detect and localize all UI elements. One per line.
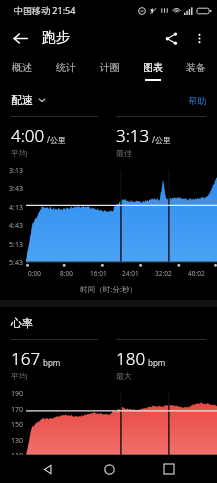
staticText: 4:00 (11, 124, 45, 147)
staticText: 4:13 (0, 203, 23, 213)
staticText: 5:13 (0, 240, 23, 250)
staticText: 装备 (186, 61, 206, 74)
button[interactable]: 帮助 (188, 95, 206, 106)
staticText: /公里 (47, 134, 66, 145)
staticText: 24:01 (122, 269, 139, 278)
staticText: 中国移动 21:54 (14, 4, 76, 16)
staticText: 170 (0, 405, 23, 415)
staticText: /公里 (152, 134, 171, 145)
staticText: 平均 (11, 148, 27, 158)
staticText: 8:00 (60, 269, 73, 278)
staticText: 3:13 (0, 166, 23, 176)
staticText: 3:13 (116, 124, 150, 147)
staticText: 心率 (11, 316, 33, 330)
staticText: 180 (116, 347, 146, 370)
staticText: 40:02 (188, 269, 205, 278)
button[interactable]: Back (6, 24, 34, 52)
staticText: 跑步 (42, 29, 70, 47)
button[interactable]: 统计 (44, 56, 88, 86)
staticText: 167 (11, 347, 41, 370)
staticText: 图表 (143, 61, 163, 74)
staticText: 帮助 (188, 95, 206, 106)
staticText: 4:43 (0, 221, 23, 231)
staticText: 概述 (12, 61, 32, 74)
button[interactable]: 心率 (11, 316, 206, 330)
button[interactable]: Recents (156, 456, 182, 482)
staticText: 5:43 (0, 258, 23, 268)
staticText: 配速 (11, 93, 33, 107)
staticText: 16:01 (90, 269, 107, 278)
button[interactable]: Home (96, 456, 122, 482)
button[interactable]: 概述 (0, 56, 44, 86)
staticText: 平均 (11, 371, 27, 381)
staticText: bpm (43, 357, 61, 368)
button[interactable]: 计圈 (88, 56, 131, 86)
staticText: 190 (0, 389, 23, 399)
staticText: 最佳 (116, 148, 132, 158)
button[interactable]: 图表 (131, 56, 174, 86)
staticText: bpm (148, 357, 166, 368)
button[interactable]: More options (185, 24, 213, 52)
staticText: 时间（时:分:秒） (0, 284, 217, 294)
staticText: 130 (0, 436, 23, 446)
staticText: 最大 (116, 371, 132, 381)
staticText: 统计 (56, 61, 76, 74)
staticText: 0:00 (28, 269, 41, 278)
button[interactable]: Share (157, 24, 185, 52)
staticText: 计圈 (100, 61, 120, 74)
staticText: 110 (0, 451, 23, 461)
button[interactable]: Back (35, 456, 61, 482)
button[interactable]: 配速 (11, 93, 46, 107)
staticText: 32:02 (155, 269, 172, 278)
staticText: 150 (0, 420, 23, 430)
staticText: 3:43 (0, 184, 23, 194)
button[interactable]: 装备 (174, 56, 217, 86)
